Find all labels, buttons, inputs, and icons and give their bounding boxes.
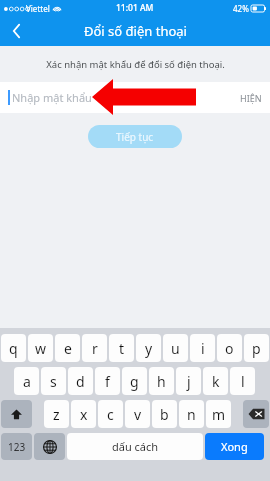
staticText: r <box>92 339 98 358</box>
button[interactable]: v <box>125 400 150 428</box>
staticText: u <box>171 339 180 358</box>
staticText: Đổi số điện thoại <box>84 22 187 40</box>
staticText: s <box>50 372 57 391</box>
staticText: f <box>105 372 110 391</box>
staticText: a <box>23 372 31 391</box>
button[interactable]: key <box>243 400 269 428</box>
staticText: 42% <box>233 3 249 14</box>
button[interactable]: l <box>230 367 255 395</box>
button[interactable]: z <box>44 400 69 428</box>
staticText: p <box>252 339 261 358</box>
staticText: v <box>134 405 142 424</box>
staticText: y <box>145 339 153 358</box>
staticText: Xác nhận mật khẩu để đổi số điện thoại. <box>46 58 225 71</box>
staticText: x <box>80 405 88 424</box>
staticText: Tiếp tục <box>116 130 154 144</box>
staticText: z <box>53 405 60 424</box>
staticText: HIỆN <box>240 92 262 104</box>
staticText: t <box>119 339 125 358</box>
button[interactable]: h <box>149 367 174 395</box>
staticText: dấu cách <box>112 439 159 454</box>
staticText: g <box>130 372 139 391</box>
button[interactable]: key <box>1 400 32 428</box>
staticText: i <box>201 339 205 358</box>
button[interactable]: w <box>28 334 53 362</box>
button[interactable]: Nhập mật khẩu <box>0 82 270 113</box>
staticText: Xong <box>221 439 248 454</box>
button[interactable]: dấu cách <box>67 433 203 460</box>
button[interactable]: Tiếp tục <box>88 125 182 148</box>
staticText: e <box>64 339 72 358</box>
staticText: d <box>76 372 85 391</box>
staticText: o <box>225 339 234 358</box>
button[interactable]: g <box>122 367 147 395</box>
button[interactable]: s <box>41 367 66 395</box>
button[interactable]: j <box>176 367 201 395</box>
button[interactable]: HIỆN <box>240 92 262 104</box>
staticText: k <box>212 372 220 391</box>
button[interactable]: e <box>55 334 80 362</box>
button[interactable]: t <box>109 334 134 362</box>
button[interactable]: Xong <box>205 433 264 460</box>
staticText: 123 <box>8 440 26 454</box>
staticText: Nhập mật khẩu <box>12 90 92 105</box>
button[interactable]: y <box>136 334 161 362</box>
button[interactable]: c <box>98 400 123 428</box>
staticText: q <box>9 339 18 358</box>
button[interactable]: o <box>217 334 242 362</box>
staticText: h <box>157 372 166 391</box>
button[interactable]: 123 <box>1 433 32 460</box>
staticText: n <box>187 405 196 424</box>
staticText: l <box>241 372 245 391</box>
button[interactable]: i <box>190 334 215 362</box>
button[interactable]: key <box>34 433 65 460</box>
button[interactable]: q <box>1 334 26 362</box>
button[interactable]: n <box>179 400 204 428</box>
button[interactable]: r <box>82 334 107 362</box>
staticText: b <box>160 405 169 424</box>
staticText: w <box>35 339 47 358</box>
button[interactable]: k <box>203 367 228 395</box>
button[interactable]: x <box>71 400 96 428</box>
staticText: j <box>187 372 191 391</box>
staticText: Viettel <box>26 3 50 14</box>
button[interactable]: f <box>95 367 120 395</box>
staticText: m <box>212 405 226 424</box>
button[interactable]: b <box>152 400 177 428</box>
button[interactable]: a <box>14 367 39 395</box>
button[interactable]: u <box>163 334 188 362</box>
button[interactable]: Back <box>0 16 34 46</box>
staticText: 11:01 AM <box>116 2 154 14</box>
button[interactable]: d <box>68 367 93 395</box>
button[interactable]: m <box>206 400 231 428</box>
staticText: c <box>107 405 114 424</box>
button[interactable]: p <box>244 334 269 362</box>
